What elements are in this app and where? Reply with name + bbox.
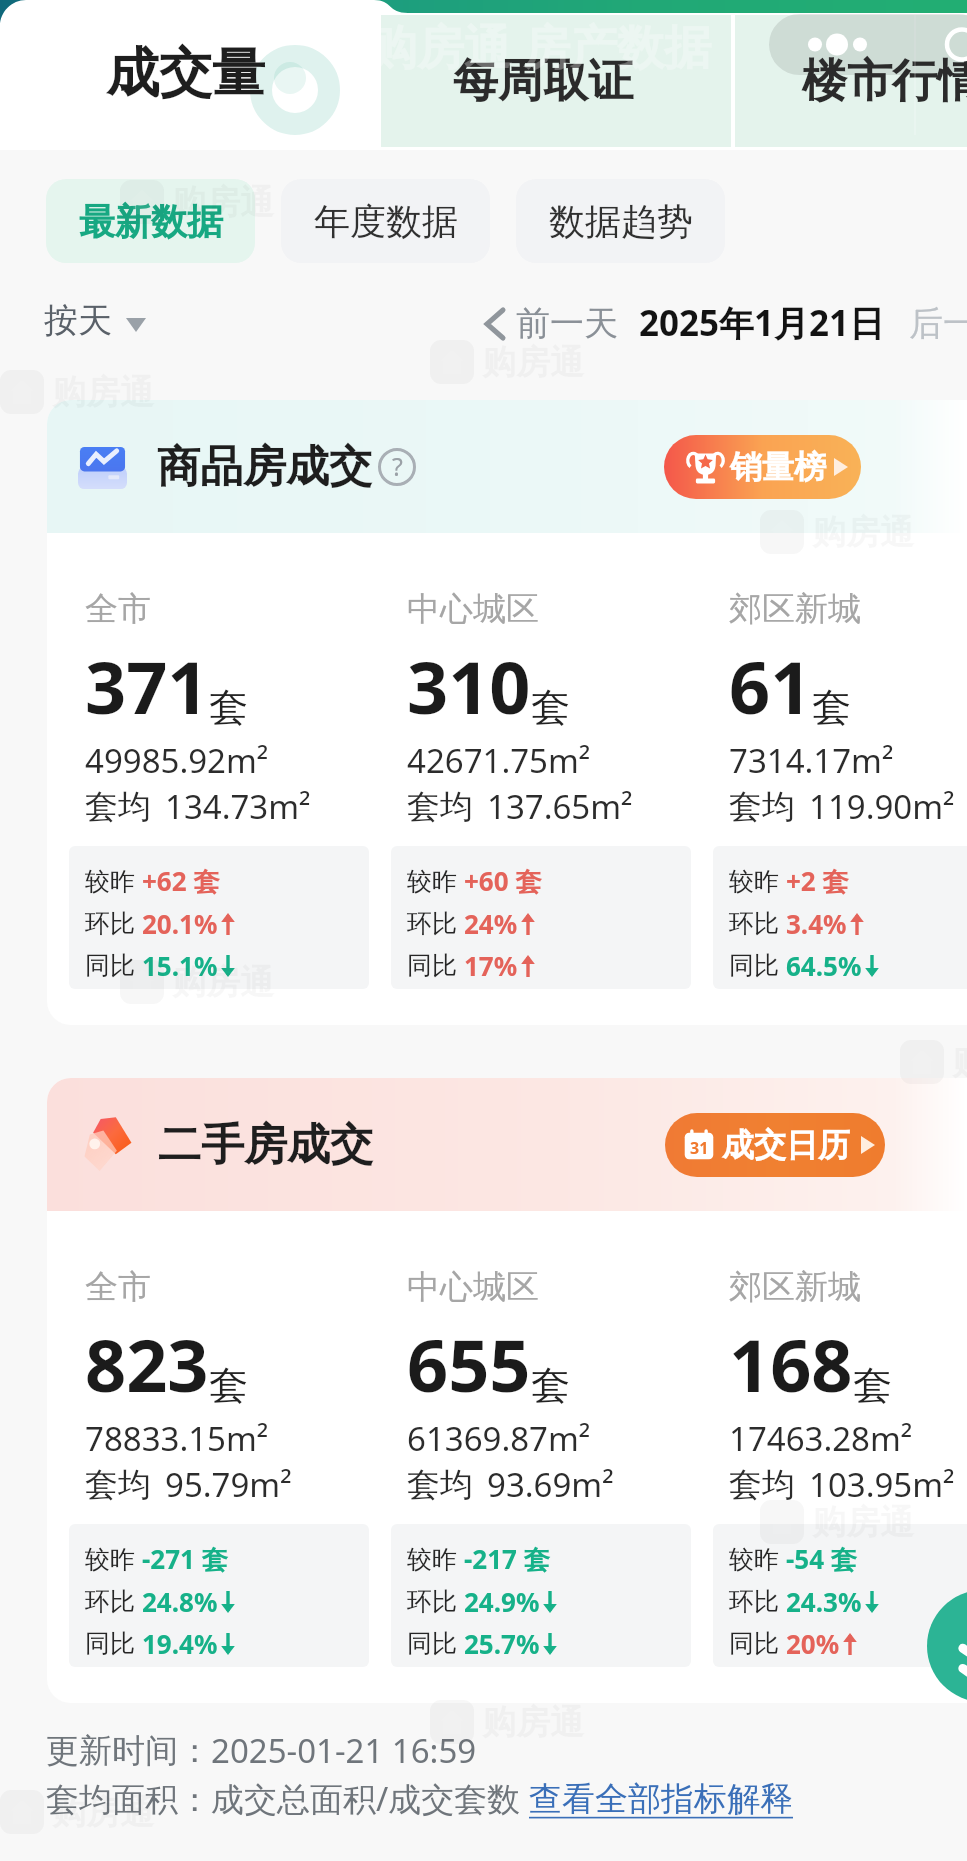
- staticText: 套: [209, 1361, 248, 1410]
- staticText: 数据趋势: [549, 199, 693, 244]
- button[interactable]: 楼市行情: [735, 15, 967, 147]
- staticText: 环比: [729, 908, 779, 939]
- staticText: 20.1%: [142, 906, 218, 941]
- button[interactable]: More options: [769, 14, 967, 75]
- staticText: 郊区新城: [729, 588, 861, 630]
- staticText: 同比: [729, 1628, 779, 1659]
- button[interactable]: 查看全部指标解释: [529, 1778, 793, 1820]
- staticText: 购房通: [482, 1701, 584, 1744]
- staticText: 销量榜: [730, 447, 826, 487]
- staticText: -54 套: [786, 1541, 857, 1577]
- staticText: 购房通: [172, 181, 274, 224]
- staticText: 103.95m²: [809, 1462, 955, 1507]
- staticText: 商品房成交: [157, 440, 372, 494]
- staticText: 2025年1月21日: [639, 299, 885, 347]
- staticText: 7314.17m²: [729, 738, 894, 783]
- staticText: 较昨: [85, 866, 135, 897]
- staticText: 823: [85, 1315, 209, 1413]
- staticText: 17463.28m²: [729, 1416, 913, 1461]
- staticText: 19.4%: [142, 1626, 218, 1661]
- staticText: 环比: [85, 1586, 135, 1617]
- button[interactable]: 销量榜: [664, 435, 861, 499]
- staticText: 42671.75m²: [407, 738, 591, 783]
- staticText: 后一天: [909, 302, 967, 345]
- staticText: 61369.87m²: [407, 1416, 591, 1461]
- staticText: 年度数据: [314, 199, 458, 244]
- staticText: 中心城区: [407, 588, 539, 630]
- staticText: 成交量: [106, 40, 265, 107]
- staticText: 24.8%: [142, 1584, 218, 1619]
- staticText: 购房通: [812, 1501, 914, 1544]
- staticText: 25.7%: [464, 1626, 540, 1661]
- staticText: 93.69m²: [487, 1462, 614, 1507]
- staticText: 每周取证: [453, 53, 633, 110]
- staticText: 郊区新城: [729, 1266, 861, 1308]
- staticText: 购房通: [52, 1791, 154, 1834]
- button[interactable]: 年度数据: [281, 179, 490, 263]
- staticText: 套: [853, 1361, 892, 1410]
- staticText: 95.79m²: [165, 1462, 292, 1507]
- staticText: 137.65m²: [487, 784, 633, 829]
- staticText: 20%: [786, 1626, 840, 1661]
- staticText: 同比: [407, 1628, 457, 1659]
- staticText: 环比: [85, 908, 135, 939]
- staticText: 楼市行情: [802, 53, 967, 110]
- staticText: 套均: [729, 786, 795, 828]
- staticText: 同比: [85, 1628, 135, 1659]
- staticText: 同比: [85, 950, 135, 981]
- button[interactable]: Help: [378, 448, 416, 486]
- button[interactable]: 数据趋势: [516, 179, 725, 263]
- staticText: 最新数据: [79, 199, 223, 244]
- staticText: +2 套: [786, 863, 849, 899]
- staticText: +60 套: [464, 863, 542, 899]
- staticText: 成交日历: [722, 1125, 850, 1165]
- staticText: 31: [690, 1137, 709, 1159]
- staticText: 购房通: [482, 341, 584, 384]
- staticText: 前一天: [516, 302, 618, 345]
- staticText: 49985.92m²: [85, 738, 269, 783]
- staticText: 同比: [729, 950, 779, 981]
- staticText: 套均: [407, 1464, 473, 1506]
- staticText: 套均: [407, 786, 473, 828]
- staticText: 套均: [729, 1464, 795, 1506]
- staticText: 全市: [85, 588, 151, 630]
- staticText: 64.5%: [786, 948, 862, 983]
- staticText: -217 套: [464, 1541, 550, 1577]
- staticText: 24.3%: [786, 1584, 862, 1619]
- button[interactable]: 后一天: [909, 302, 967, 345]
- staticText: 中心城区: [407, 1266, 539, 1308]
- button[interactable]: 31: [665, 1113, 885, 1177]
- staticText: 168: [729, 1315, 853, 1413]
- staticText: 655: [407, 1315, 531, 1413]
- staticText: 环比: [729, 1586, 779, 1617]
- staticText: 购房通 房产数据: [370, 14, 712, 78]
- staticText: 同比: [407, 950, 457, 981]
- staticText: 全市: [85, 1266, 151, 1308]
- button[interactable]: 成交量: [0, 0, 374, 150]
- staticText: 78833.15m²: [85, 1416, 269, 1461]
- button[interactable]: 按天: [44, 299, 146, 342]
- staticText: 61: [729, 637, 812, 735]
- staticText: 套均: [85, 786, 151, 828]
- staticText: 310: [407, 637, 531, 735]
- staticText: 较昨: [85, 1544, 135, 1575]
- button[interactable]: 前一天: [487, 302, 618, 345]
- button[interactable]: Back to top: [927, 1590, 967, 1702]
- staticText: 环比: [407, 908, 457, 939]
- staticText: 134.73m²: [165, 784, 311, 829]
- button[interactable]: 最新数据: [46, 179, 255, 263]
- staticText: 购房通: [812, 511, 914, 554]
- staticText: 环比: [407, 1586, 457, 1617]
- staticText: 购房通: [172, 961, 274, 1004]
- staticText: 套均面积：成交总面积/成交套数: [46, 1776, 529, 1821]
- staticText: 套: [209, 683, 248, 732]
- staticText: +62 套: [142, 863, 220, 899]
- staticText: -271 套: [142, 1541, 228, 1577]
- staticText: 较昨: [729, 1544, 779, 1575]
- button[interactable]: 每周取证: [381, 15, 731, 147]
- staticText: 较昨: [407, 866, 457, 897]
- staticText: 套: [531, 1361, 570, 1410]
- staticText: 套: [531, 683, 570, 732]
- staticText: 更新时间：: [46, 1730, 211, 1772]
- staticText: 较昨: [407, 1544, 457, 1575]
